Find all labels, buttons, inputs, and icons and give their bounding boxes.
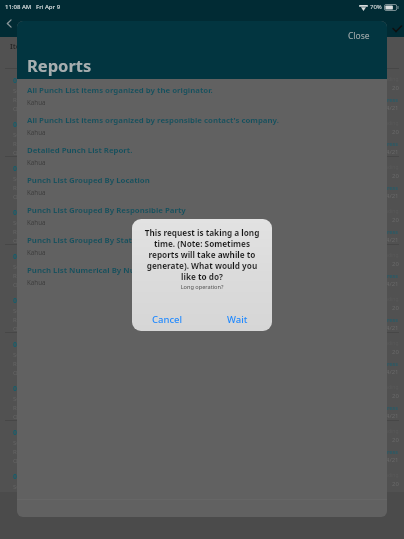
- staticText: Ref number 4821: [13, 184, 62, 192]
- staticText: Cancel: [152, 313, 183, 326]
- button[interactable]: All Punch List items organized by the or…: [17, 83, 387, 113]
- staticText: 20: [392, 392, 399, 400]
- staticText: This request is taking a long time. (Not…: [139, 227, 265, 282]
- staticText: Pending: [379, 340, 399, 347]
- staticText: Close: [348, 30, 370, 42]
- staticText: Pending: [379, 252, 399, 259]
- staticText: Submittal item detail: [13, 351, 72, 359]
- button[interactable]: Punch List Grouped By Location: [17, 173, 387, 203]
- staticText: Ref number 4821: [13, 404, 62, 412]
- staticText: Ref number 4821: [13, 272, 62, 280]
- staticText: In progress: [367, 140, 399, 147]
- staticText: 70%: [370, 3, 382, 11]
- staticText: 09 - Punch item record: [13, 428, 91, 438]
- button[interactable]: Punch List Grouped By Status: [17, 233, 387, 263]
- staticText: Pending: [379, 76, 399, 83]
- staticText: 11:08 AM Fri Apr 9: [5, 3, 61, 11]
- staticText: Ref number 4821: [13, 140, 62, 148]
- staticText: Originator name: [13, 237, 60, 244]
- staticText: Ref number 4821: [13, 360, 62, 368]
- staticText: 4/21: [386, 192, 399, 200]
- staticText: Submittal item detail: [13, 307, 72, 315]
- staticText: 06 - Punch item record: [13, 296, 91, 306]
- staticText: 20: [392, 216, 399, 224]
- staticText: Kahua: [27, 98, 46, 106]
- staticText: Submittal item detail: [13, 219, 72, 227]
- staticText: Originator name: [13, 281, 60, 288]
- staticText: Pending: [379, 428, 399, 435]
- staticText: 4/21: [386, 236, 399, 244]
- staticText: Kahua: [27, 278, 46, 286]
- button[interactable]: Punch List Numerical By Number: [17, 263, 387, 293]
- button[interactable]: Cancel: [132, 307, 202, 331]
- staticText: 05 - Punch item record: [13, 252, 91, 262]
- staticText: Originator name: [13, 193, 60, 200]
- staticText: Submittal item detail: [13, 175, 72, 183]
- staticText: Kahua: [27, 248, 46, 256]
- staticText: Long operation?: [132, 283, 272, 291]
- staticText: Originator name: [13, 325, 60, 332]
- staticText: 07 - Punch item record: [13, 340, 91, 350]
- staticText: 20: [392, 436, 399, 444]
- button[interactable]: All Punch List items organized by respon…: [17, 113, 387, 143]
- staticText: Detailed Punch List Report.: [27, 145, 133, 156]
- staticText: 4/21: [386, 368, 399, 376]
- staticText: Originator name: [13, 105, 60, 112]
- staticText: Ref number 4821: [13, 228, 62, 236]
- button[interactable]: Wait: [202, 307, 272, 331]
- staticText: Pending: [379, 208, 399, 215]
- staticText: Originator name: [13, 413, 60, 420]
- staticText: Ref number 4821: [13, 448, 62, 456]
- staticText: Pending: [379, 120, 399, 127]
- staticText: 20: [392, 84, 399, 92]
- staticText: 4/21: [386, 412, 399, 420]
- staticText: 03 - Punch item record: [13, 164, 91, 174]
- staticText: Kahua: [27, 188, 46, 196]
- staticText: 4/21: [386, 148, 399, 156]
- staticText: Kahua: [27, 128, 46, 136]
- staticText: Kahua: [27, 218, 46, 226]
- staticText: 08 - Punch item record: [13, 384, 91, 394]
- staticText: Punch List Grouped By Status: [27, 235, 141, 246]
- staticText: Originator name: [13, 369, 60, 376]
- staticText: Kahua: [27, 158, 46, 166]
- button[interactable]: Close: [342, 26, 376, 46]
- staticText: 20: [392, 304, 399, 312]
- staticText: In progress: [367, 184, 399, 191]
- button[interactable]: Back: [3, 17, 16, 30]
- staticText: Submittal item detail: [13, 439, 72, 447]
- staticText: 04 - Punch item record: [13, 208, 91, 218]
- staticText: Submittal item detail: [13, 483, 72, 491]
- staticText: In progress: [367, 272, 399, 279]
- staticText: Submittal item detail: [13, 131, 72, 139]
- staticText: Pending: [379, 164, 399, 171]
- staticText: In progress: [367, 360, 399, 367]
- button[interactable]: Detailed Punch List Report.: [17, 143, 387, 173]
- staticText: 20: [392, 172, 399, 180]
- staticText: 010 - Punch item record: [13, 472, 95, 482]
- staticText: 20: [392, 480, 399, 488]
- staticText: Originator name: [13, 457, 60, 464]
- staticText: Originator name: [13, 149, 60, 156]
- staticText: Ref number 4821: [13, 96, 62, 104]
- staticText: 20: [392, 260, 399, 268]
- button[interactable]: Punch List Grouped By Responsible Party: [17, 203, 387, 233]
- staticText: Pending: [379, 472, 399, 479]
- staticText: 4/21: [386, 104, 399, 112]
- staticText: Pending: [379, 296, 399, 303]
- staticText: Pending: [379, 384, 399, 391]
- staticText: All Punch List items organized by respon…: [27, 115, 279, 126]
- staticText: Punch List Grouped By Responsible Party: [27, 205, 186, 216]
- staticText: 20: [392, 348, 399, 356]
- staticText: 20: [392, 128, 399, 136]
- staticText: Ref number 4821: [13, 316, 62, 324]
- staticText: 02 - Punch item record: [13, 120, 91, 130]
- staticText: In progress: [367, 96, 399, 103]
- staticText: Items: [10, 42, 31, 52]
- staticText: 01 - Punch item record: [13, 76, 91, 86]
- staticText: All Punch List items organized by the or…: [27, 85, 213, 96]
- staticText: In progress: [367, 404, 399, 411]
- staticText: 4/21: [386, 456, 399, 464]
- staticText: 4/21: [386, 280, 399, 288]
- staticText: 4/21: [386, 324, 399, 332]
